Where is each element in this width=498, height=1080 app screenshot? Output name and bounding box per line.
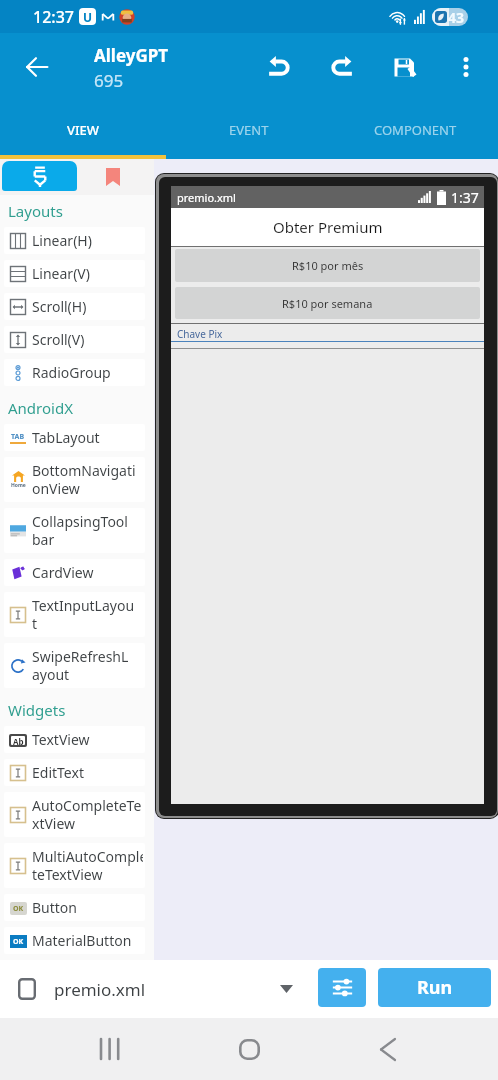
- button[interactable]: TAB: [4, 424, 145, 451]
- staticText: MaterialButton: [32, 931, 132, 950]
- button[interactable]: Linear(H): [4, 227, 145, 254]
- staticText: TextInputLayou t: [32, 596, 135, 633]
- staticText: CardView: [32, 563, 94, 582]
- staticText: RadioGroup: [32, 363, 111, 382]
- button[interactable]: premio.xml: [0, 966, 305, 1012]
- button[interactable]: SwipeRefreshL ayout: [4, 643, 145, 688]
- staticText: EVENT: [229, 121, 269, 139]
- staticText: SwipeRefreshL ayout: [32, 647, 129, 684]
- staticText: BottomNavigati onView: [32, 461, 136, 498]
- staticText: U: [83, 9, 93, 25]
- staticText: TextView: [32, 730, 90, 749]
- button[interactable]: COMPONENT: [332, 110, 498, 150]
- staticText: MultiAutoComple teTextView: [32, 847, 143, 884]
- staticText: AlleyGPT: [94, 44, 169, 67]
- button[interactable]: Favorites: [91, 159, 135, 195]
- staticText: TabLayout: [32, 428, 100, 447]
- staticText: R$10 por semana: [282, 296, 373, 311]
- button[interactable]: Linear(V): [4, 260, 145, 287]
- button[interactable]: CardView: [4, 559, 145, 586]
- staticText: OK: [13, 937, 24, 947]
- button[interactable]: More options: [444, 45, 488, 89]
- button[interactable]: Recents: [79, 1018, 139, 1080]
- staticText: VIEW: [67, 121, 100, 139]
- button[interactable]: OK: [4, 927, 145, 954]
- staticText: Obter Premium: [273, 217, 383, 237]
- button[interactable]: R$10 por semana: [175, 287, 480, 319]
- staticText: Home: [11, 482, 26, 489]
- staticText: COMPONENT: [374, 121, 457, 139]
- button[interactable]: R$10 por mês: [175, 249, 480, 282]
- button[interactable]: OK: [4, 894, 145, 921]
- staticText: AutoCompleteTe xtView: [32, 796, 142, 833]
- button[interactable]: EVENT: [166, 110, 332, 150]
- staticText: OK: [13, 904, 24, 914]
- button[interactable]: Widget palette: [2, 161, 77, 191]
- button[interactable]: VIEW: [0, 110, 166, 150]
- button[interactable]: Scroll(H): [4, 293, 145, 320]
- button[interactable]: Scroll(V): [4, 326, 145, 353]
- button[interactable]: Ab: [4, 726, 145, 753]
- staticText: premio.xml: [177, 190, 236, 205]
- button[interactable]: Redo: [320, 45, 364, 89]
- staticText: CollapsingTool bar: [32, 512, 128, 549]
- staticText: Run: [417, 975, 453, 1000]
- staticText: AndroidX: [8, 398, 73, 418]
- staticText: Scroll(V): [32, 330, 85, 349]
- button[interactable]: Undo: [257, 45, 301, 89]
- staticText: 43: [448, 8, 465, 26]
- staticText: TAB: [11, 432, 25, 442]
- button[interactable]: Run: [378, 968, 491, 1007]
- staticText: Widgets: [8, 700, 66, 720]
- staticText: premio.xml: [54, 978, 146, 1001]
- staticText: 1:37: [451, 188, 479, 207]
- staticText: Linear(V): [32, 264, 90, 283]
- button[interactable]: Back: [358, 1018, 418, 1080]
- button[interactable]: Project settings: [318, 968, 366, 1007]
- staticText: EditText: [32, 763, 84, 782]
- button[interactable]: RadioGroup: [4, 359, 145, 386]
- button[interactable]: TextInputLayou t: [4, 592, 145, 637]
- staticText: Button: [32, 898, 77, 917]
- button[interactable]: Home: [4, 457, 145, 502]
- button[interactable]: Save: [382, 45, 426, 89]
- staticText: Scroll(H): [32, 297, 87, 316]
- button[interactable]: AutoCompleteTe xtView: [4, 792, 145, 837]
- staticText: Linear(H): [32, 231, 92, 250]
- button[interactable]: MultiAutoComple teTextView: [4, 843, 145, 888]
- staticText: 12:37: [33, 6, 74, 28]
- button[interactable]: Home: [219, 1018, 279, 1080]
- button[interactable]: Back: [15, 45, 59, 89]
- button[interactable]: EditText: [4, 759, 145, 786]
- staticText: Ab: [13, 736, 24, 745]
- button[interactable]: CollapsingTool bar: [4, 508, 145, 553]
- staticText: R$10 por mês: [292, 258, 364, 273]
- staticText: Layouts: [8, 201, 63, 221]
- staticText: Chave Pix: [177, 327, 223, 341]
- staticText: 695: [94, 69, 124, 92]
